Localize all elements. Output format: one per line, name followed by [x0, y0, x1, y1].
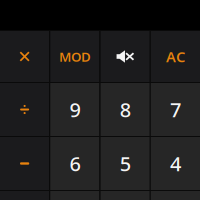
- button[interactable]: AC: [151, 31, 200, 82]
- button[interactable]: 8: [100, 83, 150, 136]
- staticText: 8: [120, 96, 131, 123]
- button[interactable]: 6: [50, 137, 99, 190]
- staticText: 7: [170, 96, 181, 123]
- button[interactable]: 9: [50, 83, 99, 136]
- button[interactable]: Divide: [0, 83, 49, 136]
- staticText: 4: [170, 150, 181, 177]
- button[interactable]: 5: [100, 137, 150, 190]
- staticText: MOD: [59, 48, 91, 65]
- button[interactable]: MOD: [50, 31, 99, 82]
- button[interactable]: Multiply: [0, 31, 49, 82]
- staticText: 6: [69, 150, 80, 177]
- button[interactable]: Minus: [0, 137, 49, 190]
- button[interactable]: Mute: [100, 31, 150, 82]
- staticText: 9: [69, 96, 80, 123]
- button[interactable]: 7: [151, 83, 200, 136]
- button[interactable]: 4: [151, 137, 200, 190]
- staticText: 5: [120, 150, 131, 177]
- staticText: AC: [166, 47, 185, 66]
